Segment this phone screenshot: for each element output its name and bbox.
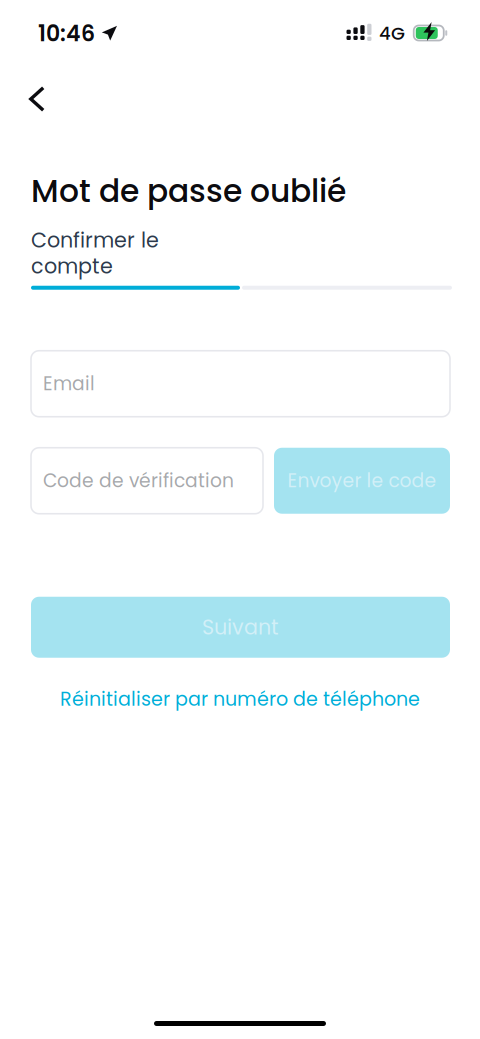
staticText: Suivant [202,613,279,642]
button[interactable]: Back [29,75,77,123]
button[interactable]: Réinitialiser par numéro de téléphone [54,677,426,721]
button[interactable]: Envoyer le code [274,448,450,514]
staticText: Confirmer le [31,226,159,255]
staticText: Code de vérification [43,468,234,494]
staticText: Mot de passe oublié [31,169,346,213]
button[interactable]: Suivant [31,597,450,658]
staticText: 10:46 [38,18,95,49]
staticText: Envoyer le code [287,468,436,494]
staticText: compte [31,252,113,281]
staticText: Email [43,371,95,397]
staticText: 4G [379,21,405,46]
staticText: Réinitialiser par numéro de téléphone [60,686,420,712]
